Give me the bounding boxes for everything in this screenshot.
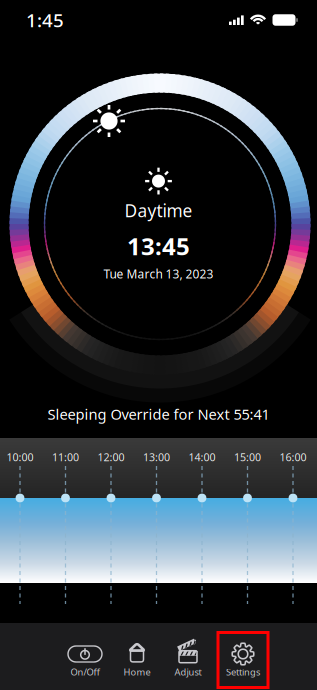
staticText: 16:00: [279, 450, 306, 464]
staticText: 1:45: [26, 8, 64, 32]
button[interactable]: Home: [112, 632, 162, 687]
staticText: 14:00: [188, 450, 215, 464]
staticText: Daytime: [124, 199, 192, 222]
staticText: 13:45: [127, 230, 190, 262]
staticText: Sleeping Override for Next 55:41: [47, 404, 269, 424]
staticText: Settings: [226, 666, 260, 678]
button[interactable]: Settings: [218, 632, 268, 687]
button[interactable]: Adjust: [163, 632, 213, 687]
staticText: Adjust: [174, 666, 201, 678]
button[interactable]: On/Off: [60, 632, 110, 687]
staticText: 12:00: [97, 450, 124, 464]
staticText: 11:00: [52, 450, 79, 464]
staticText: Tue March 13, 2023: [103, 266, 213, 282]
staticText: 13:00: [143, 450, 170, 464]
staticText: 10:00: [6, 450, 33, 464]
staticText: Home: [123, 666, 150, 678]
staticText: On/Off: [70, 666, 99, 678]
staticText: 15:00: [234, 450, 261, 464]
